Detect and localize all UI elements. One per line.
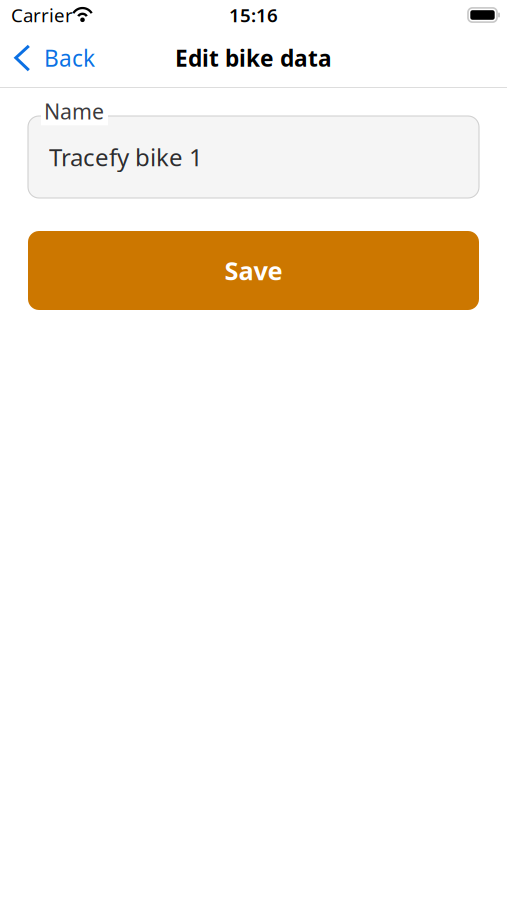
- staticText: Edit bike data: [175, 43, 332, 73]
- staticText: Save: [224, 254, 282, 287]
- button[interactable]: Save: [28, 231, 479, 310]
- staticText: Name: [44, 97, 104, 125]
- button[interactable]: Back: [0, 38, 105, 78]
- staticText: Carrier: [11, 3, 73, 27]
- staticText: 15:16: [229, 3, 278, 27]
- staticText: Tracefy bike 1: [49, 141, 203, 173]
- staticText: Back: [44, 43, 95, 73]
